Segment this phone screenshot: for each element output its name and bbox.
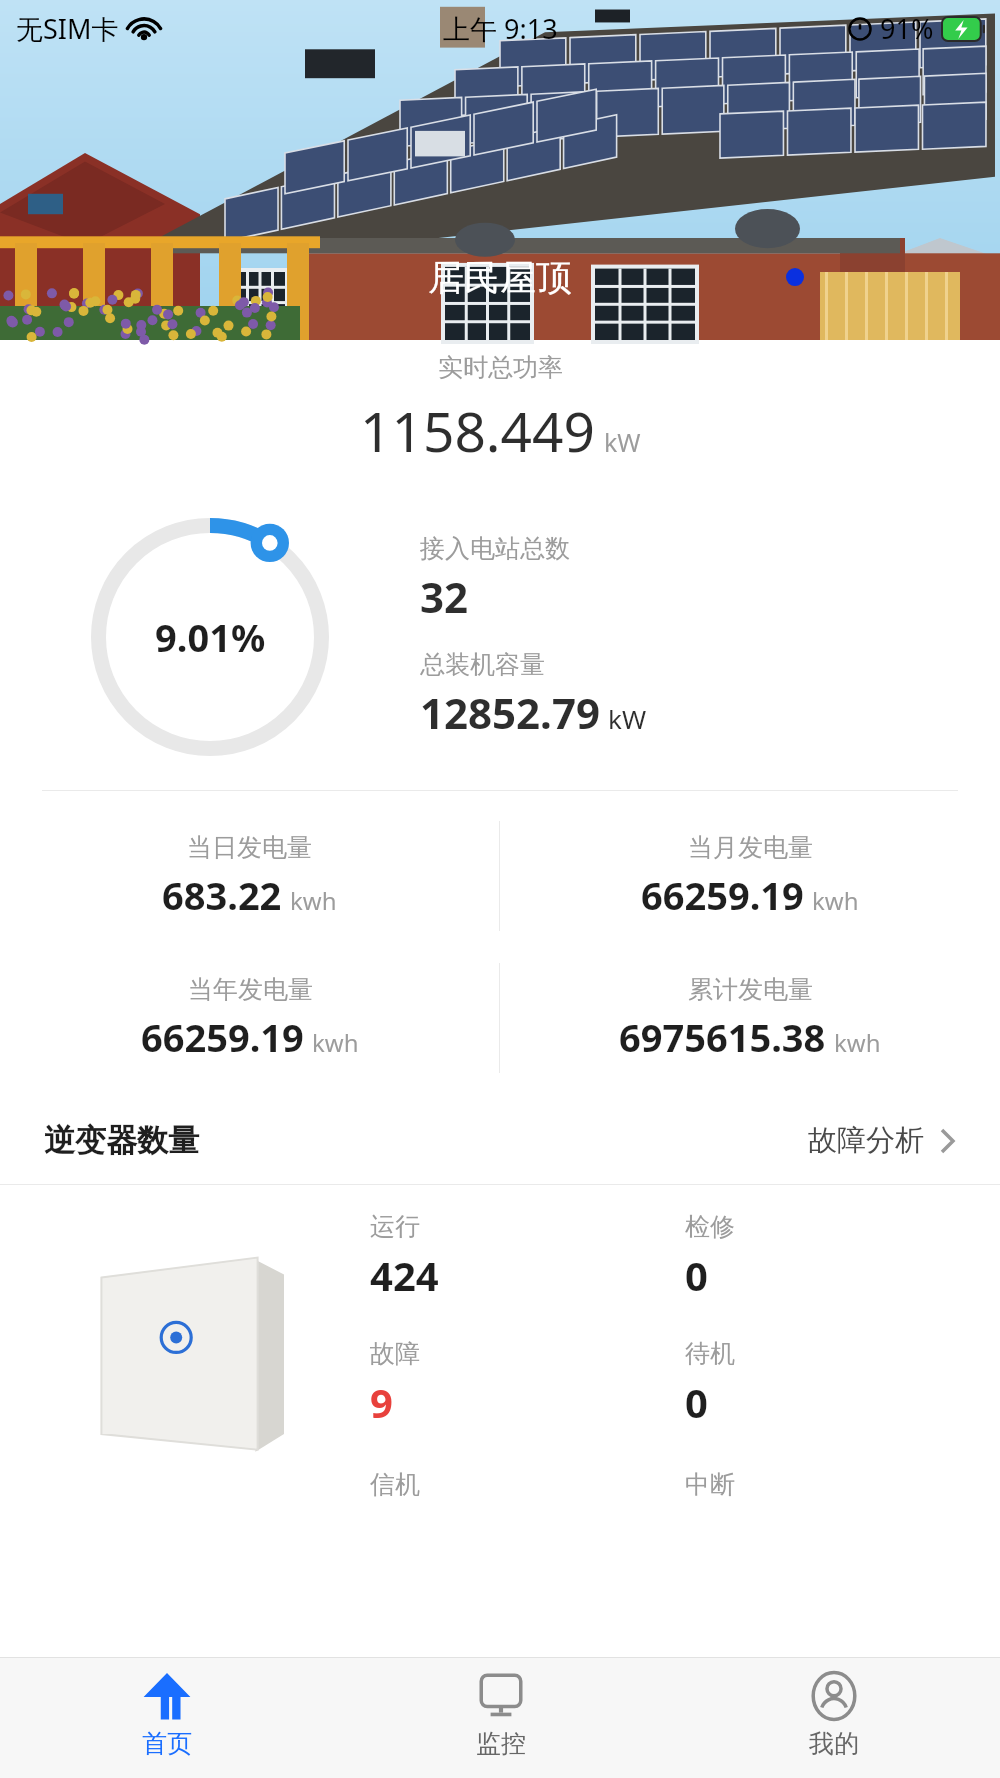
button[interactable]: 逆变器数量	[0, 1115, 1000, 1166]
staticText: 待机	[685, 1338, 735, 1369]
staticText: 我的	[809, 1728, 859, 1759]
staticText: 9.01%	[155, 611, 266, 663]
staticText: 接入电站总数	[420, 533, 570, 564]
staticText: 66259.19	[641, 869, 804, 921]
staticText: kW	[604, 425, 641, 459]
staticText: 上午 9:13	[443, 10, 558, 47]
staticText: 9	[370, 1375, 393, 1429]
staticText: 0	[685, 1248, 708, 1302]
staticText: kwh	[812, 884, 859, 917]
staticText: 当日发电量	[187, 832, 312, 863]
staticText: 32	[420, 568, 469, 625]
staticText: 实时总功率	[438, 352, 563, 383]
staticText: 中断	[685, 1469, 735, 1500]
staticText: 91%	[880, 10, 934, 47]
staticText: 首页	[142, 1728, 192, 1759]
staticText: 累计发电量	[688, 974, 813, 1005]
staticText: 逆变器数量	[44, 1121, 199, 1160]
staticText: 1158.449	[360, 393, 595, 468]
staticText: 683.22	[162, 869, 282, 921]
staticText: 检修	[685, 1211, 735, 1242]
staticText: 当月发电量	[688, 832, 813, 863]
button[interactable]: 监控	[334, 1658, 667, 1778]
staticText: 总装机容量	[420, 649, 545, 680]
staticText: 当年发电量	[188, 974, 313, 1005]
staticText: 66259.19	[141, 1011, 304, 1063]
staticText: 居民屋顶	[428, 255, 572, 300]
staticText: kwh	[290, 884, 337, 917]
button[interactable]: 首页	[0, 1658, 334, 1778]
staticText: 6975615.38	[619, 1011, 826, 1063]
staticText: 监控	[476, 1728, 526, 1759]
staticText: 0	[685, 1375, 708, 1429]
staticText: kwh	[312, 1026, 359, 1059]
staticText: 故障	[370, 1338, 420, 1369]
staticText: 运行	[370, 1211, 420, 1242]
button[interactable]: 我的	[667, 1658, 1000, 1778]
other: 故障分析	[940, 1127, 956, 1155]
staticText: 无SIM卡	[16, 10, 119, 47]
staticText: 信机	[370, 1469, 420, 1500]
staticText: kW	[608, 701, 647, 736]
staticText: 12852.79	[420, 684, 600, 741]
staticText: 424	[370, 1248, 439, 1302]
staticText: kwh	[834, 1026, 881, 1059]
staticText: 故障分析	[808, 1122, 924, 1159]
